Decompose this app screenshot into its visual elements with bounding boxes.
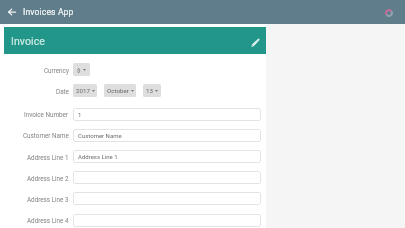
staticText: Address Line 1: [78, 153, 118, 160]
button[interactable]: Address Line 1: [73, 150, 261, 163]
staticText: Invoices App: [23, 7, 74, 17]
staticText: Address Line 4: [27, 217, 69, 224]
staticText: 1: [78, 111, 82, 118]
button[interactable]: 13: [143, 84, 161, 97]
staticText: Currency: [44, 67, 69, 74]
button[interactable]: October: [104, 84, 136, 97]
staticText: Address Line 1: [27, 154, 69, 161]
staticText: 13: [146, 87, 153, 94]
button[interactable]: $: [73, 63, 90, 76]
button[interactable]: Sync: [383, 7, 395, 19]
staticText: 2017: [76, 87, 90, 94]
staticText: October: [107, 87, 129, 94]
staticText: Date: [56, 88, 69, 95]
button[interactable]: [73, 171, 261, 184]
staticText: Address Line 3: [27, 196, 69, 203]
button[interactable]: Edit: [247, 35, 263, 51]
button[interactable]: Back: [4, 4, 20, 20]
staticText: Customer Name: [78, 132, 122, 139]
button[interactable]: Customer Name: [73, 129, 261, 142]
button[interactable]: [73, 192, 261, 205]
staticText: Customer Name: [23, 132, 69, 139]
button[interactable]: [73, 214, 261, 227]
staticText: Invoice Number: [24, 111, 69, 118]
button[interactable]: 2017: [73, 84, 97, 97]
staticText: Invoice: [11, 35, 45, 47]
staticText: Address Line 2: [27, 175, 69, 182]
staticText: $: [77, 66, 81, 73]
button[interactable]: 1: [73, 108, 261, 121]
